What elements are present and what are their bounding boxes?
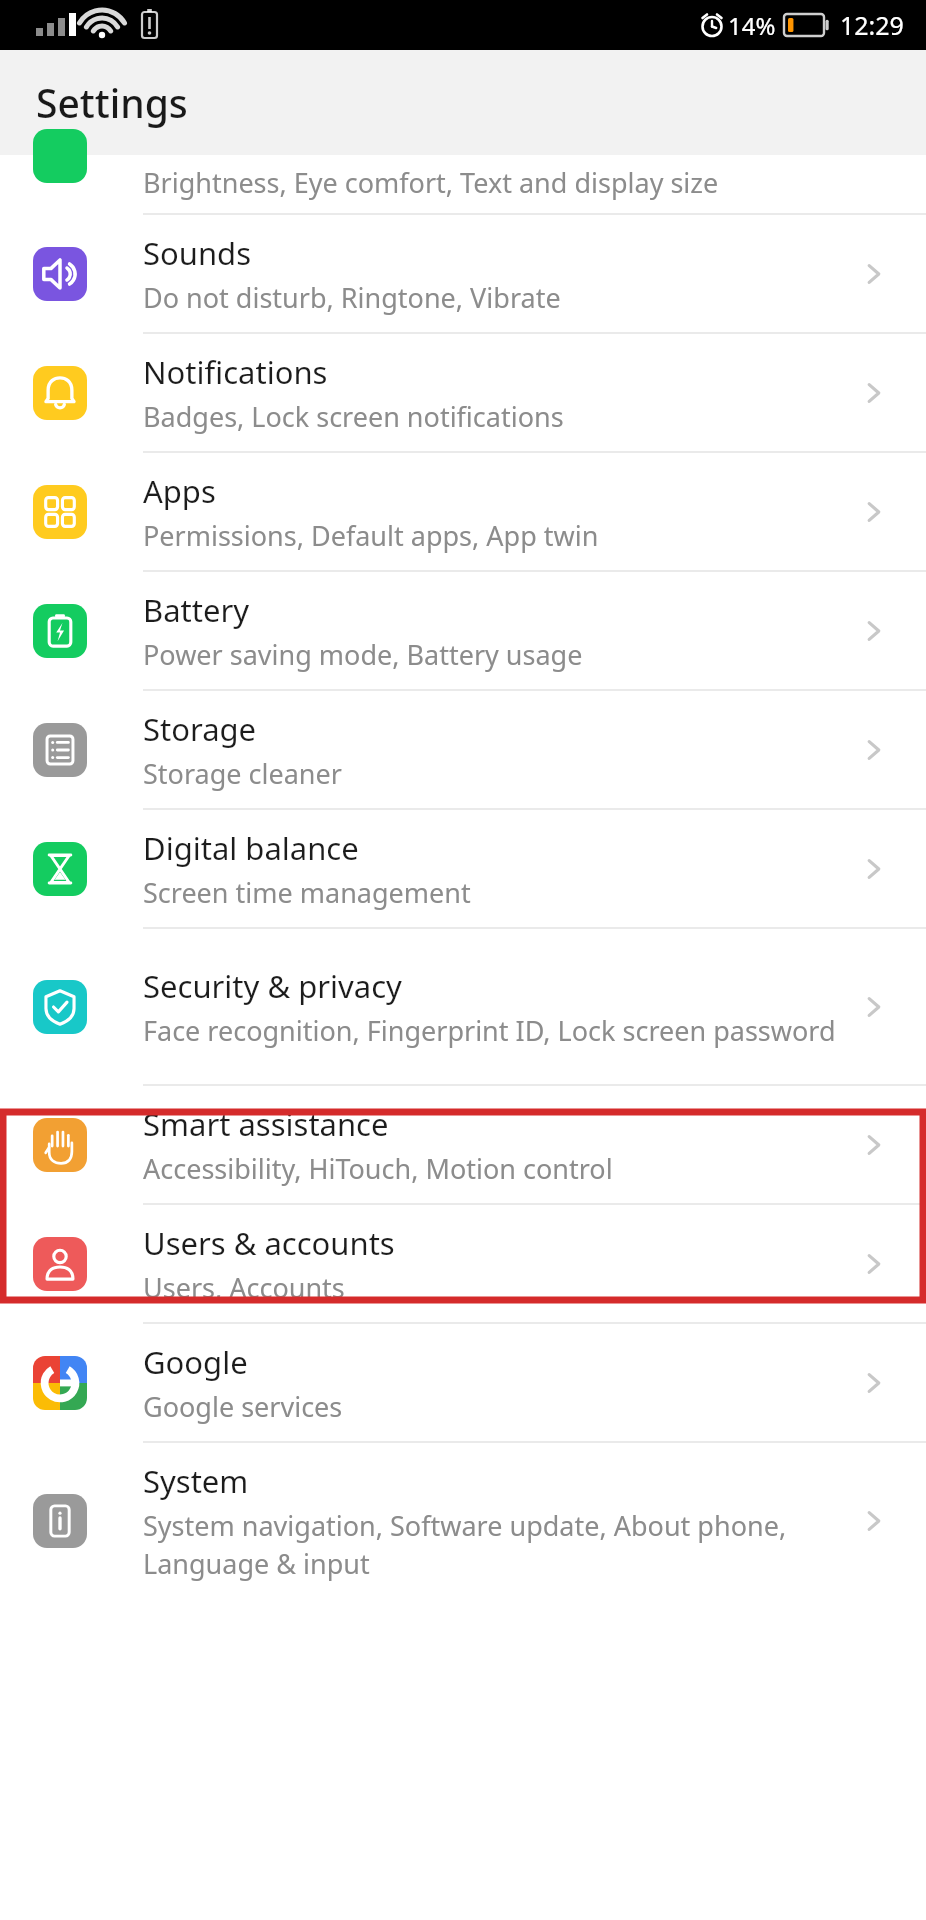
button[interactable]: Users & accounts xyxy=(0,1205,926,1322)
staticText: Storage cleaner xyxy=(143,755,342,792)
button[interactable]: Storage xyxy=(0,691,926,808)
other: Users & accounts xyxy=(850,1240,898,1288)
staticText: Storage xyxy=(143,708,257,750)
staticText: Screen time management xyxy=(143,874,471,911)
staticText: Digital balance xyxy=(143,827,359,869)
button[interactable]: Digital balance xyxy=(0,810,926,927)
other: Apps xyxy=(850,488,898,536)
button[interactable]: Brightness, Eye comfort, Text and displa… xyxy=(0,155,926,213)
button[interactable]: System xyxy=(0,1443,926,1598)
other: Security & privacy xyxy=(850,983,898,1031)
staticText: Apps xyxy=(143,470,216,512)
other: Sounds xyxy=(850,250,898,298)
button[interactable]: Sounds xyxy=(0,215,926,332)
staticText: Security & privacy xyxy=(143,965,402,1007)
staticText: Face recognition, Fingerprint ID, Lock s… xyxy=(143,1012,836,1049)
staticText: Do not disturb, Ringtone, Vibrate xyxy=(143,279,561,316)
button[interactable]: Smart assistance xyxy=(0,1086,926,1203)
other: Google xyxy=(850,1359,898,1407)
staticText: Users, Accounts xyxy=(143,1269,345,1306)
other: Smart assistance xyxy=(850,1121,898,1169)
staticText: System xyxy=(143,1460,249,1502)
other: Notifications xyxy=(850,369,898,417)
staticText: Settings xyxy=(36,76,188,129)
staticText: Users & accounts xyxy=(143,1222,395,1264)
staticText: Google services xyxy=(143,1388,343,1425)
staticText: Badges, Lock screen notifications xyxy=(143,398,564,435)
staticText: Smart assistance xyxy=(143,1103,389,1145)
staticText: Permissions, Default apps, App twin xyxy=(143,517,599,554)
button[interactable]: Notifications xyxy=(0,334,926,451)
staticText: Power saving mode, Battery usage xyxy=(143,636,583,673)
staticText: Accessibility, HiTouch, Motion control xyxy=(143,1150,613,1187)
other: Storage xyxy=(850,726,898,774)
staticText: Notifications xyxy=(143,351,328,393)
staticText: Battery xyxy=(143,589,250,631)
button[interactable]: Google xyxy=(0,1324,926,1441)
staticText: 14% xyxy=(728,9,776,42)
button[interactable]: Battery xyxy=(0,572,926,689)
other: Battery xyxy=(850,607,898,655)
staticText: 12:29 xyxy=(840,8,904,42)
staticText: Sounds xyxy=(143,232,252,274)
button[interactable]: Security & privacy xyxy=(0,929,926,1084)
staticText: Brightness, Eye comfort, Text and displa… xyxy=(143,164,719,201)
other: Digital balance xyxy=(850,845,898,893)
button[interactable]: Apps xyxy=(0,453,926,570)
other: System xyxy=(850,1497,898,1545)
staticText: Google xyxy=(143,1341,248,1383)
staticText: System navigation, Software update, Abou… xyxy=(143,1507,838,1582)
